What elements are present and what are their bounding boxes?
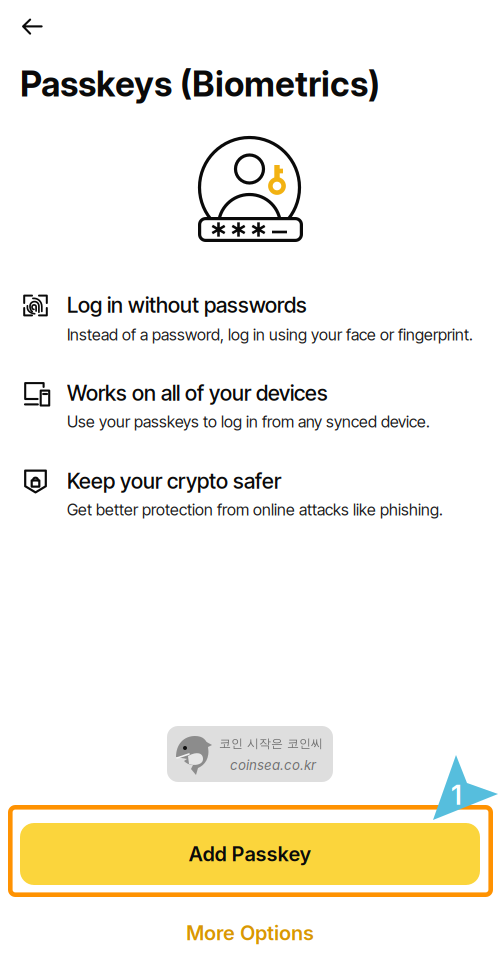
- staticText: coinsea.co.kr: [230, 757, 316, 773]
- button[interactable]: Back: [0, 0, 63, 50]
- staticText: Passkeys (Biometrics): [20, 63, 380, 105]
- staticText: 코인 시작은 코인씨: [219, 736, 323, 751]
- staticText: Instead of a password, log in using your…: [67, 325, 473, 344]
- staticText: Keep your crypto safer: [67, 468, 281, 494]
- staticText: 1: [451, 779, 462, 811]
- staticText: More Options: [186, 921, 314, 945]
- button[interactable]: Add Passkey: [20, 823, 480, 885]
- staticText: Use your passkeys to log in from any syn…: [67, 412, 430, 431]
- staticText: Add Passkey: [188, 842, 311, 866]
- staticText: Log in without passwords: [67, 292, 307, 318]
- staticText: Works on all of your devices: [67, 380, 328, 406]
- staticText: Get better protection from online attack…: [67, 500, 443, 519]
- button[interactable]: More Options: [150, 913, 350, 953]
